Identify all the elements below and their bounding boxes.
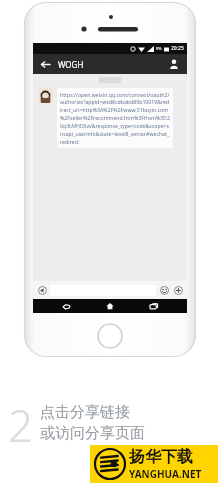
button[interactable]: Recent apps — [144, 299, 164, 313]
button[interactable]: Voice message — [36, 284, 48, 296]
button[interactable]: Back — [57, 299, 77, 313]
staticText: 或访问分享页面 — [40, 424, 145, 443]
staticText: WOGH — [58, 59, 84, 70]
button[interactable]: https://open.weixin.qq.com/connect/oauth… — [57, 88, 173, 148]
staticText: 点击分享链接 — [40, 403, 130, 422]
staticText: 20:25 — [171, 45, 184, 52]
button[interactable]: Home — [100, 299, 120, 313]
staticText: 2 — [8, 395, 34, 455]
button[interactable]: More — [172, 284, 184, 296]
staticText: https://open.weixin.qq.com/connect/oauth… — [60, 91, 170, 145]
button[interactable]: Back — [38, 57, 52, 71]
button[interactable]: Contact info — [166, 56, 182, 72]
staticText: 0% — [156, 46, 162, 51]
staticText: 扬华下载 — [129, 447, 193, 467]
button[interactable]: Emoji — [158, 284, 170, 296]
staticText: YANGHUA.NET — [129, 467, 202, 481]
button[interactable]: Avatar — [38, 88, 53, 103]
